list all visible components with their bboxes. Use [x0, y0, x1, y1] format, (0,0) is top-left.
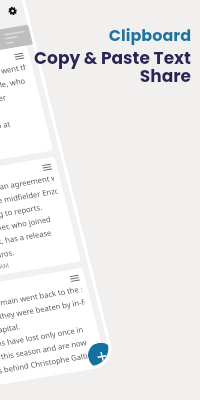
staticText: Copy & Paste Text Share — [34, 46, 191, 88]
staticText: Chelsea have reached an agreement with B… — [17, 205, 150, 280]
staticText: Paris Saint Germain went back to the sum… — [17, 316, 150, 391]
button[interactable]: Paris Saint Germain went back to the sum… — [9, 301, 156, 397]
staticText: In doing so, Cristiano Ronaldo went thro… — [17, 94, 150, 169]
staticText: Dec 18 (Sun) 12:06:10 AM — [17, 283, 86, 291]
button[interactable]: Settings — [146, 39, 155, 48]
button[interactable] — [107, 59, 162, 79]
staticText: Clipboard — [108, 24, 191, 46]
staticText: Dec 18 (Sun) 12:08:45 AM — [17, 172, 86, 180]
button[interactable]: Chelsea have reached an agreement with B… — [9, 190, 156, 295]
button[interactable]: In doing so, Cristiano Ronaldo went thro… — [9, 79, 156, 184]
